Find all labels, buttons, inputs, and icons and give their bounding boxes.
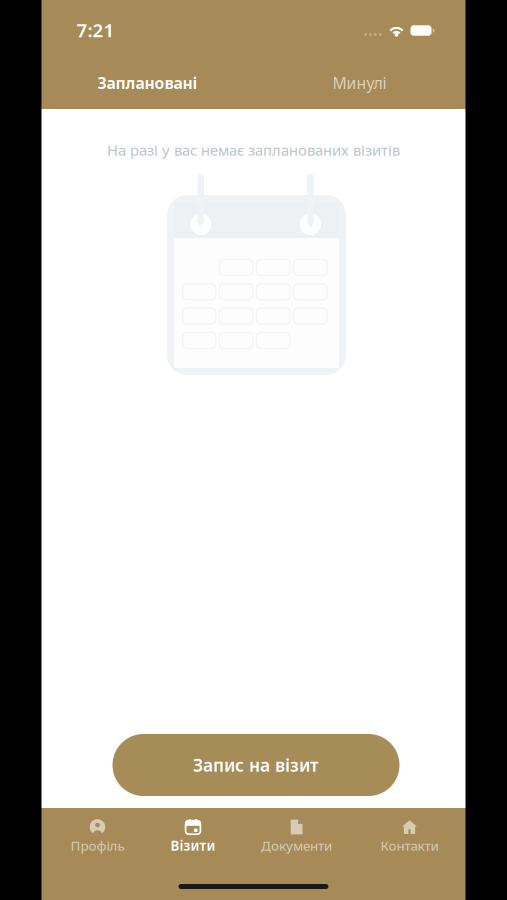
staticText: На разі у вас немає запланованих візитів — [107, 140, 400, 160]
button[interactable]: Заплановані — [41, 60, 253, 106]
staticText: Заплановані — [97, 72, 197, 94]
staticText: 7:21 — [76, 17, 114, 43]
staticText: Візити — [170, 836, 215, 855]
button[interactable]: Запис на візит — [112, 734, 399, 796]
button[interactable]: Минулі — [253, 60, 465, 106]
button[interactable]: Документи — [232, 819, 360, 855]
button[interactable]: Візити — [153, 819, 232, 855]
staticText: Профіль — [70, 836, 124, 855]
staticText: Документи — [261, 836, 332, 855]
staticText: Запис на візит — [193, 753, 319, 777]
button[interactable]: Контакти — [360, 819, 458, 855]
staticText: Минулі — [332, 72, 386, 94]
staticText: Контакти — [380, 836, 438, 855]
button[interactable]: Профіль — [41, 819, 153, 855]
